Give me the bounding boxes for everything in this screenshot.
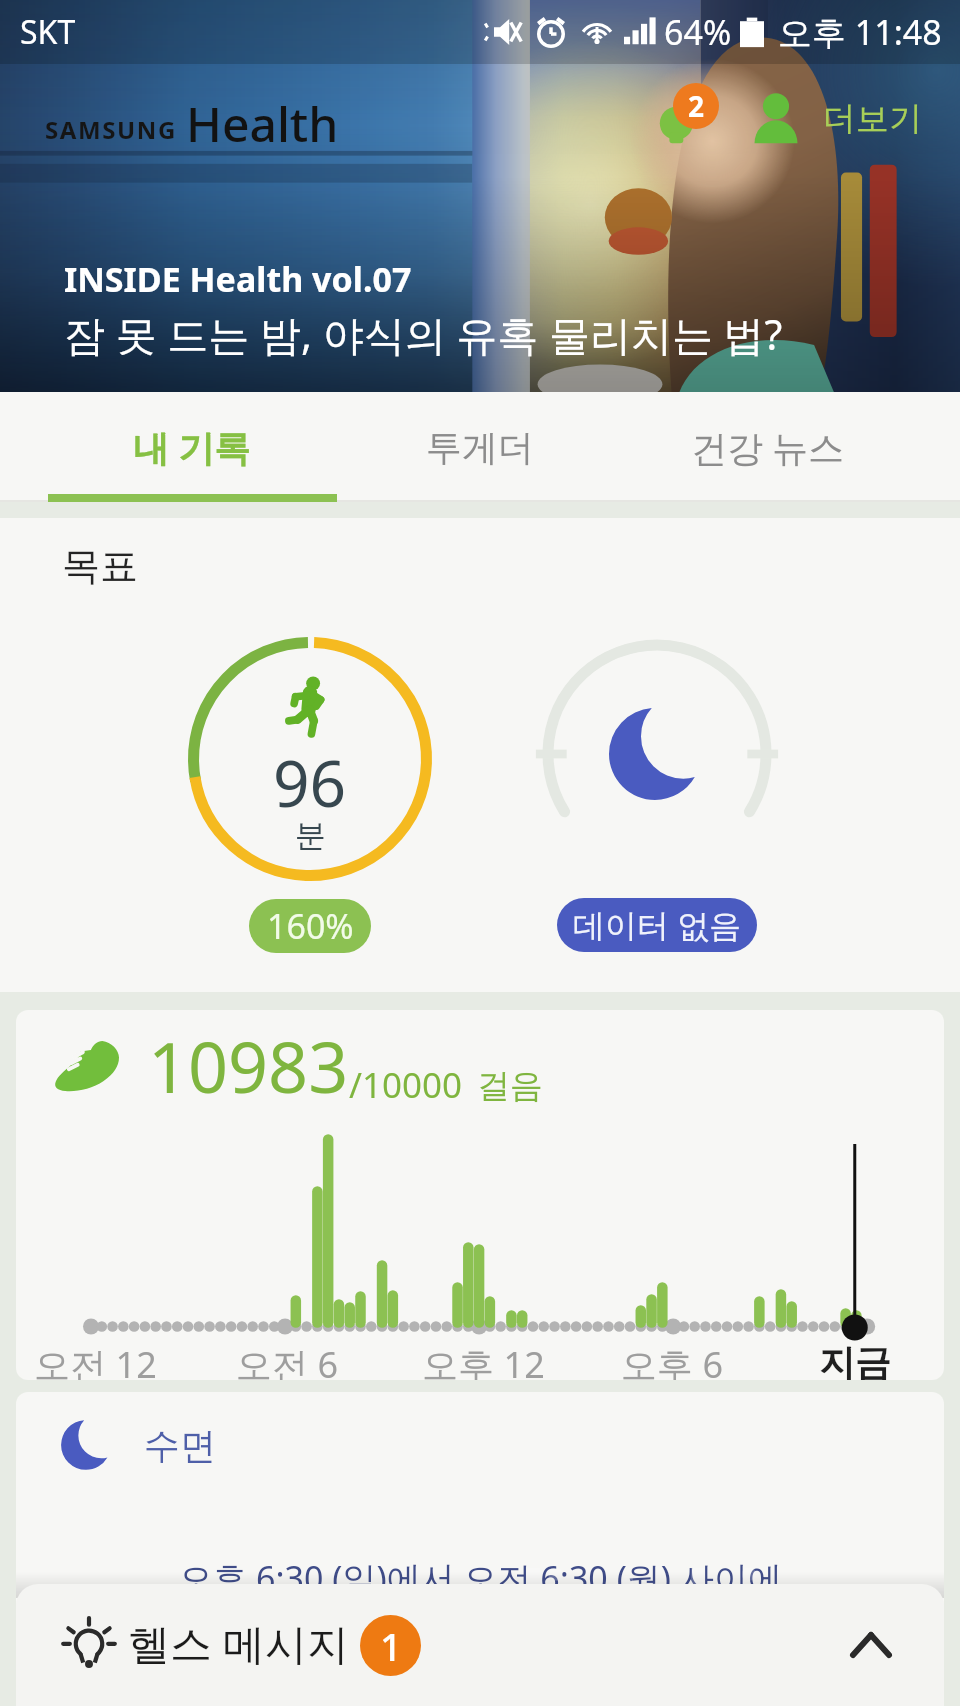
staticText: 잠 못 드는 밤, 야식의 유혹 물리치는 법? <box>64 306 783 362</box>
staticText: /10000 <box>349 1061 463 1109</box>
staticText: INSIDE Health vol.07 <box>64 256 412 302</box>
button[interactable]: 96 <box>188 637 432 953</box>
button[interactable]: 건강 뉴스 <box>576 392 960 502</box>
button[interactable]: 내 기록 <box>0 392 384 502</box>
staticText: 목표 <box>62 542 138 590</box>
staticText: 오후 6:30 (일)에서 오전 6:30 (월) 사이에 <box>179 1555 782 1601</box>
button[interactable]: Profile <box>733 78 819 160</box>
staticText: 오후 6 <box>621 1340 723 1380</box>
staticText: dietshin <box>493 1542 811 1656</box>
staticText: 걸음 <box>477 1065 543 1107</box>
staticText: SAMSUNG <box>45 113 177 146</box>
staticText: 오전 6 <box>236 1340 338 1380</box>
staticText: 오전 12 <box>34 1340 157 1380</box>
button[interactable]: Expand health message <box>840 1614 902 1676</box>
button[interactable]: 투게더 <box>384 392 576 502</box>
staticText: 수면 <box>144 1423 216 1468</box>
button[interactable]: 160% <box>249 899 371 953</box>
staticText: 분 <box>295 816 326 855</box>
staticText: 헬스 메시지 <box>128 1614 349 1671</box>
staticText: 10983 <box>148 1018 349 1113</box>
staticText: 데이터 없음 <box>573 903 742 947</box>
button[interactable]: 수면 <box>16 1392 944 1692</box>
staticText: SKT <box>20 10 76 54</box>
staticText: 2 <box>688 87 705 125</box>
staticText: 64% <box>664 9 732 55</box>
staticText: 1 <box>380 1620 402 1672</box>
button[interactable]: 데이터 없음 <box>557 898 757 952</box>
staticText: 160% <box>267 903 354 949</box>
staticText: 투게더 <box>426 425 534 470</box>
staticText: Health <box>186 91 339 153</box>
button[interactable]: 더보기 <box>823 98 922 140</box>
staticText: 건강 뉴스 <box>691 423 845 472</box>
staticText: .com <box>811 1591 912 1648</box>
button[interactable] <box>535 632 779 876</box>
staticText: 더보기 <box>823 98 922 140</box>
button[interactable]: 10983 <box>16 1010 944 1380</box>
staticText: 오후 11:48 <box>778 9 942 55</box>
staticText: 내 기록 <box>133 423 251 472</box>
staticText: 지금 <box>819 1340 891 1380</box>
staticText: 오후 12 <box>422 1340 545 1380</box>
button[interactable]: 헬스 메시지 <box>16 1584 944 1706</box>
button[interactable]: Health tips <box>637 78 733 160</box>
staticText: 96 <box>273 739 347 826</box>
